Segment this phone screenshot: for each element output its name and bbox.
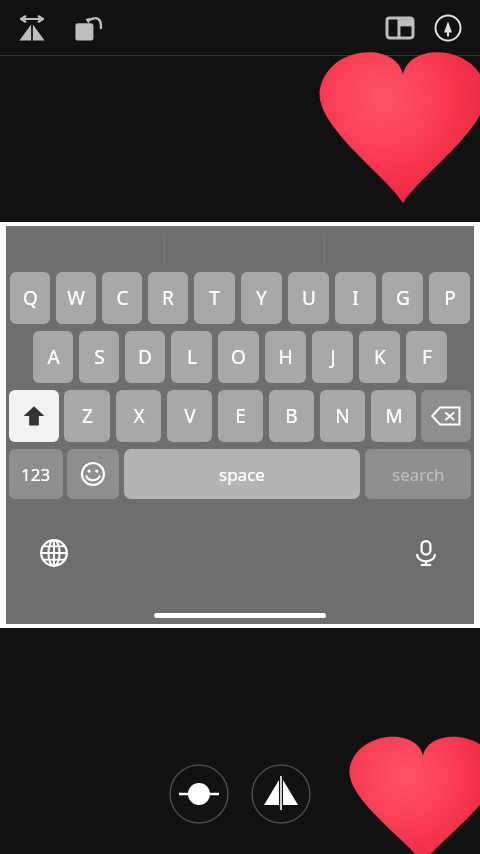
staticText: space <box>219 463 265 486</box>
staticText: B <box>285 403 298 429</box>
staticText: M <box>385 403 403 429</box>
button[interactable]: Voice input <box>404 531 448 575</box>
button[interactable]: R <box>148 272 188 324</box>
button[interactable]: 123 <box>9 449 63 499</box>
staticText: U <box>302 285 316 311</box>
button[interactable]: A <box>33 331 73 383</box>
staticText: W <box>67 285 85 311</box>
staticText: P <box>444 285 456 311</box>
button[interactable]: H <box>265 331 306 383</box>
button[interactable]: L <box>171 331 212 383</box>
staticText: C <box>116 285 129 311</box>
button[interactable]: B <box>269 390 314 442</box>
button[interactable]: G <box>382 272 423 324</box>
button[interactable]: Z <box>64 390 110 442</box>
button[interactable]: V <box>167 390 212 442</box>
staticText: L <box>187 344 197 370</box>
button[interactable]: D <box>125 331 165 383</box>
button[interactable]: Flip horizontal <box>8 4 56 52</box>
staticText: X <box>133 403 145 429</box>
staticText: A <box>47 344 60 370</box>
staticText: G <box>396 285 410 311</box>
staticText: Z <box>82 403 93 429</box>
button[interactable]: Change keyboard <box>32 531 76 575</box>
staticText: search <box>392 463 445 486</box>
button[interactable]: C <box>102 272 142 324</box>
button[interactable]: Shift <box>9 390 59 442</box>
button[interactable]: Backspace <box>421 390 471 442</box>
staticText: I <box>352 285 359 311</box>
button[interactable]: U <box>288 272 329 324</box>
button[interactable]: J <box>312 331 353 383</box>
button[interactable]: S <box>79 331 119 383</box>
button[interactable]: O <box>218 331 259 383</box>
staticText: T <box>209 285 220 311</box>
staticText: F <box>422 344 432 370</box>
button[interactable]: X <box>116 390 161 442</box>
button[interactable]: M <box>371 390 416 442</box>
button[interactable]: E <box>218 390 263 442</box>
button[interactable]: W <box>56 272 96 324</box>
staticText: Q <box>23 285 38 311</box>
button[interactable]: Y <box>241 272 282 324</box>
staticText: H <box>278 344 293 370</box>
button[interactable]: Rotate <box>64 4 112 52</box>
button[interactable]: P <box>429 272 470 324</box>
staticText: O <box>231 344 246 370</box>
button[interactable]: I <box>335 272 376 324</box>
button[interactable]: Q <box>10 272 50 324</box>
button[interactable]: N <box>320 390 365 442</box>
button[interactable]: T <box>194 272 235 324</box>
staticText: D <box>138 344 152 370</box>
staticText: R <box>162 285 174 311</box>
staticText: Y <box>256 285 267 311</box>
button[interactable]: space <box>124 449 360 499</box>
staticText: 123 <box>21 463 51 486</box>
button[interactable]: Draw <box>424 4 472 52</box>
staticText: E <box>235 403 246 429</box>
button[interactable]: Flip vertical <box>169 764 229 824</box>
staticText: V <box>184 403 196 429</box>
staticText: J <box>330 344 336 370</box>
button[interactable]: search <box>365 449 471 499</box>
button[interactable]: F <box>406 331 447 383</box>
button[interactable]: Emoji <box>67 449 119 499</box>
staticText: K <box>374 344 386 370</box>
button[interactable]: Flip horizontal <box>251 764 311 824</box>
staticText: S <box>94 344 105 370</box>
staticText: N <box>335 403 350 429</box>
button[interactable]: Layout <box>376 4 424 52</box>
button[interactable]: K <box>359 331 400 383</box>
